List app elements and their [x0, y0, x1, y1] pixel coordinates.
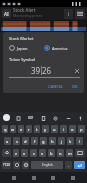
button[interactable]: v — [39, 149, 46, 157]
staticText: 26 — [42, 65, 52, 76]
button[interactable]: b — [48, 149, 55, 157]
staticText: America — [52, 46, 68, 51]
button[interactable]: s — [13, 137, 20, 145]
button[interactable] — [1, 21, 86, 23]
button[interactable]: Japan — [9, 44, 44, 52]
staticText: o — [71, 127, 74, 132]
staticText: and changes — [13, 18, 34, 20]
button[interactable]: OK — [70, 83, 80, 90]
button[interactable]: Backspace — [75, 149, 85, 157]
staticText: x — [23, 151, 26, 156]
staticText: i — [68, 11, 70, 18]
staticText: g — [42, 139, 45, 144]
button[interactable]: Keyboard — [67, 173, 79, 183]
staticText: d — [24, 139, 27, 144]
button[interactable]: l — [76, 137, 83, 145]
button[interactable]: y — [42, 125, 49, 133]
button[interactable]: z — [13, 149, 19, 157]
staticText: a — [6, 139, 9, 144]
staticText: Ticker Symbol — [9, 57, 36, 62]
staticText: t — [36, 127, 38, 132]
button[interactable]: w — [10, 125, 16, 133]
button[interactable]: u — [51, 125, 58, 133]
staticText: u — [53, 127, 56, 132]
button[interactable]: Clipboard — [14, 114, 22, 122]
staticText: ?123 — [3, 163, 10, 167]
button[interactable]: Info — [64, 9, 73, 19]
staticText: w — [11, 127, 15, 132]
button[interactable]: Enter — [74, 161, 85, 169]
staticText: q — [4, 127, 7, 132]
staticText: l — [79, 139, 81, 144]
button[interactable]: CANCEL — [46, 83, 66, 90]
button[interactable]: n — [57, 149, 64, 157]
staticText: c — [33, 151, 35, 156]
button[interactable]: h — [49, 137, 56, 145]
staticText: . — [68, 163, 69, 168]
staticText: s — [16, 139, 18, 144]
staticText: Monitoring prices — [13, 13, 43, 18]
button[interactable]: Home — [28, 173, 40, 183]
button[interactable]: Back — [8, 173, 20, 183]
staticText: p — [80, 127, 83, 132]
button[interactable]: d — [22, 137, 29, 145]
staticText: Stock Alert — [13, 7, 36, 13]
button[interactable]: Clear text — [73, 67, 80, 74]
staticText: h — [51, 139, 54, 144]
button[interactable]: t — [34, 125, 40, 133]
button[interactable]: o — [69, 125, 76, 133]
button[interactable]: America — [44, 44, 80, 52]
staticText: GIF — [28, 116, 34, 120]
button[interactable]: Settings — [51, 114, 59, 122]
button[interactable]: a — [4, 137, 11, 145]
button[interactable]: f — [31, 137, 38, 145]
staticText: v — [41, 151, 44, 156]
button[interactable] — [1, 25, 86, 27]
staticText: 39 — [31, 65, 41, 76]
button[interactable] — [1, 29, 86, 31]
button[interactable]: GIF — [27, 115, 35, 121]
button[interactable]: Google — [3, 114, 10, 121]
button[interactable]: App icon — [2, 9, 11, 18]
button[interactable]: Stickers — [39, 114, 47, 122]
staticText: e — [20, 127, 23, 132]
button[interactable]: j — [58, 137, 65, 145]
staticText: CANCEL — [48, 84, 64, 89]
staticText: OK — [72, 84, 78, 89]
button[interactable]: p — [78, 125, 85, 133]
button[interactable]: Voice input — [76, 114, 84, 122]
staticText: n — [59, 151, 62, 156]
button[interactable]: English — [31, 161, 63, 169]
staticText: i — [63, 127, 65, 132]
button[interactable]: Recents — [47, 173, 59, 183]
button[interactable]: Emoji — [13, 161, 20, 169]
button[interactable]: ?123 — [2, 161, 11, 169]
staticText: r — [28, 127, 30, 132]
button[interactable]: g — [40, 137, 47, 145]
staticText: m — [68, 151, 72, 156]
staticText: j — [61, 139, 63, 144]
staticText: AI — [4, 11, 9, 17]
button[interactable]: . — [65, 161, 72, 169]
button[interactable]: k — [67, 137, 74, 145]
button[interactable]: Change language — [22, 161, 29, 169]
button[interactable]: r — [26, 125, 32, 133]
button[interactable]: m — [66, 149, 73, 157]
staticText: y — [44, 127, 47, 132]
staticText: b — [50, 151, 53, 156]
button[interactable] — [1, 23, 86, 25]
button[interactable]: e — [18, 125, 24, 133]
button[interactable]: q — [2, 125, 8, 133]
button[interactable]: More — [64, 114, 72, 122]
button[interactable]: c — [30, 149, 37, 157]
staticText: f — [34, 139, 36, 144]
button[interactable]: x — [21, 149, 28, 157]
button[interactable] — [1, 27, 86, 29]
button[interactable]: i — [60, 125, 67, 133]
button[interactable]: Shift — [2, 149, 11, 157]
button[interactable]: Menu — [75, 9, 85, 19]
staticText: English — [42, 163, 53, 167]
staticText: z — [15, 151, 17, 156]
staticText: Japan — [17, 46, 28, 51]
staticText: Stock Market — [9, 36, 34, 41]
